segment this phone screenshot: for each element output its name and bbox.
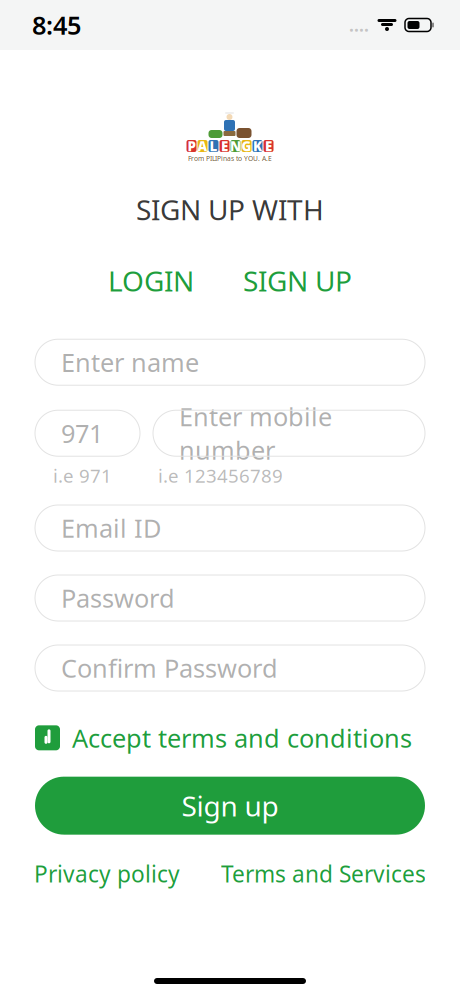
staticText: E: [221, 137, 228, 155]
staticText: Enter mobile number: [179, 400, 332, 467]
button[interactable]: LOGIN: [100, 258, 202, 303]
button[interactable]: Terms and Services: [221, 855, 426, 893]
staticText: A: [197, 137, 207, 155]
button[interactable]: Accept terms and conditions: [35, 721, 412, 755]
staticText: i.e 123456789: [158, 463, 283, 488]
staticText: N: [230, 137, 241, 155]
staticText: G: [241, 137, 251, 155]
staticText: SIGN UP: [243, 262, 352, 299]
button[interactable]: Confirm Password: [35, 645, 425, 691]
button[interactable]: Email ID: [35, 505, 425, 551]
staticText: Terms and Services: [221, 859, 426, 889]
button[interactable]: Enter name: [35, 339, 425, 385]
staticText: Sign up: [181, 787, 278, 824]
staticText: Confirm Password: [61, 651, 278, 685]
button[interactable]: 971: [35, 410, 140, 456]
staticText: i.e 971: [53, 463, 112, 488]
staticText: SIGN UP WITH: [136, 191, 324, 228]
staticText: Password: [61, 581, 175, 615]
staticText: Accept terms and conditions: [72, 721, 412, 755]
staticText: Enter name: [61, 345, 199, 379]
staticText: Email ID: [61, 511, 161, 545]
staticText: 971: [61, 416, 103, 450]
button[interactable]: Sign up: [35, 777, 425, 835]
button[interactable]: Password: [35, 575, 425, 621]
staticText: LOGIN: [108, 262, 194, 299]
staticText: Privacy policy: [34, 859, 180, 889]
staticText: 8:45: [32, 8, 81, 42]
staticText: From PILIPinas to YOU. A.E: [188, 154, 272, 163]
button[interactable]: Enter mobile number: [153, 410, 425, 456]
staticText: K: [253, 137, 262, 155]
staticText: ....: [349, 13, 369, 36]
button[interactable]: Privacy policy: [34, 855, 180, 893]
staticText: P: [187, 137, 195, 155]
staticText: L: [209, 137, 217, 155]
button[interactable]: SIGN UP: [235, 258, 360, 303]
staticText: E: [265, 137, 272, 155]
